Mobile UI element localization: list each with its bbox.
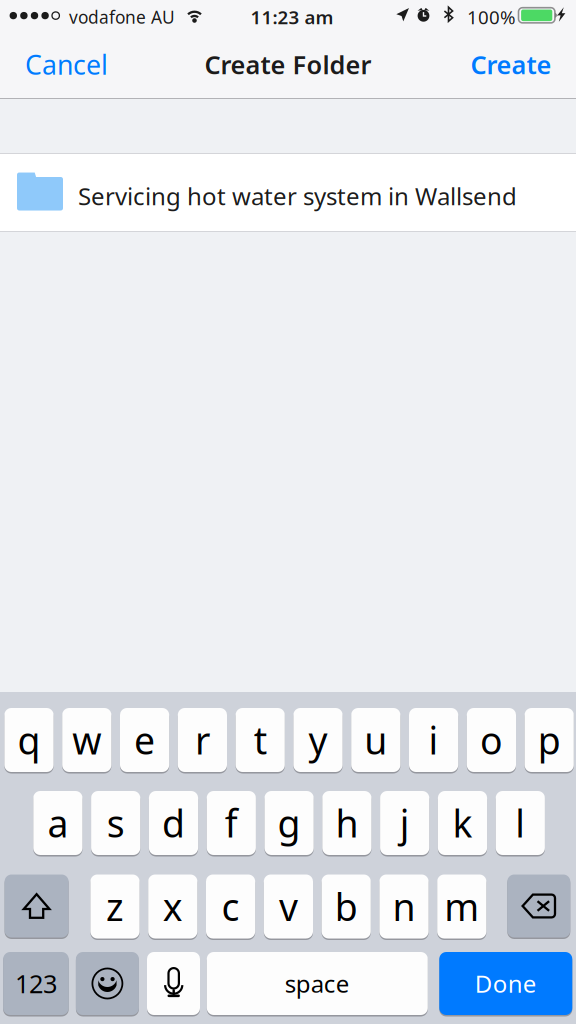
button[interactable]: w <box>62 708 111 772</box>
staticText: j <box>400 798 410 848</box>
staticText: r <box>195 715 210 765</box>
staticText: s <box>107 798 125 848</box>
button[interactable]: 123 <box>3 952 69 1015</box>
staticText: l <box>515 798 525 848</box>
button[interactable]: n <box>379 874 429 938</box>
staticText: w <box>72 715 101 765</box>
staticText: Done <box>475 968 537 999</box>
button[interactable]: u <box>351 708 400 772</box>
button[interactable]: a <box>33 791 82 855</box>
staticText: Cancel <box>25 47 108 82</box>
staticText: y <box>308 715 327 765</box>
button[interactable]: g <box>264 791 314 855</box>
button[interactable]: q <box>4 708 54 772</box>
staticText: m <box>444 882 479 931</box>
button[interactable]: l <box>496 791 545 855</box>
staticText: Create Folder <box>204 48 371 81</box>
button[interactable]: j <box>380 791 429 855</box>
button[interactable]: Shift <box>5 874 69 937</box>
staticText: 11:23 am <box>250 5 333 29</box>
button[interactable]: Servicing hot water system in Wallsend <box>0 154 576 231</box>
button[interactable]: p <box>525 708 574 772</box>
button[interactable]: m <box>437 874 486 938</box>
staticText: v <box>279 882 298 931</box>
staticText: t <box>254 715 267 765</box>
staticText: i <box>429 715 439 765</box>
staticText: Servicing hot water system in Wallsend <box>78 180 517 212</box>
button[interactable]: Done <box>439 952 572 1015</box>
staticText: z <box>106 882 124 931</box>
staticText: vodafone AU <box>69 6 175 29</box>
staticText: c <box>222 882 240 931</box>
button[interactable]: i <box>409 708 458 772</box>
button[interactable]: z <box>90 874 140 938</box>
button[interactable]: s <box>91 791 140 855</box>
staticText: space <box>285 968 350 999</box>
button[interactable]: Emoji <box>76 952 139 1015</box>
staticText: k <box>452 798 472 848</box>
staticText: d <box>162 798 185 848</box>
staticText: g <box>278 798 301 848</box>
staticText: u <box>364 715 387 765</box>
button[interactable]: v <box>264 874 313 938</box>
button[interactable]: Delete <box>507 874 570 937</box>
button[interactable]: Create <box>451 36 551 92</box>
button[interactable]: y <box>293 708 343 772</box>
staticText: q <box>17 715 40 765</box>
staticText: 100% <box>467 5 516 29</box>
button[interactable]: d <box>149 791 198 855</box>
button[interactable]: c <box>206 874 255 938</box>
staticText: b <box>335 882 358 931</box>
staticText: n <box>392 882 415 931</box>
staticText: p <box>538 715 561 765</box>
button[interactable]: k <box>438 791 487 855</box>
button[interactable]: Cancel <box>25 36 135 92</box>
button[interactable]: space <box>207 952 428 1015</box>
button[interactable]: b <box>322 874 371 938</box>
staticText: o <box>480 715 503 765</box>
staticText: e <box>134 715 155 765</box>
staticText: h <box>335 798 358 848</box>
staticText: x <box>163 882 183 931</box>
button[interactable]: e <box>120 708 169 772</box>
staticText: f <box>225 798 238 848</box>
button[interactable]: o <box>467 708 516 772</box>
button[interactable]: Dictation <box>147 952 200 1015</box>
button[interactable]: f <box>207 791 256 855</box>
staticText: Create <box>470 48 551 81</box>
staticText: a <box>47 798 68 848</box>
button[interactable]: h <box>322 791 371 855</box>
button[interactable]: x <box>148 874 197 938</box>
button[interactable]: r <box>178 708 227 772</box>
button[interactable]: t <box>236 708 285 772</box>
staticText: 123 <box>15 967 57 1000</box>
